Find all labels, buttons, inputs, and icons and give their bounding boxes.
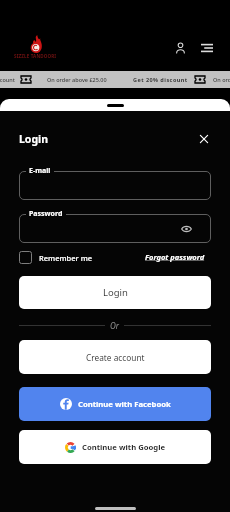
staticText: Continue with Google	[82, 442, 166, 452]
staticText: Login	[19, 132, 49, 146]
staticText: Password	[29, 209, 63, 219]
button[interactable]: Remember me	[19, 251, 93, 264]
button[interactable]: Menu	[195, 36, 219, 60]
staticText: Get 20% discount	[133, 76, 188, 83]
button[interactable]	[19, 171, 211, 200]
staticText: Login	[103, 286, 128, 299]
button[interactable]: Close	[194, 129, 214, 149]
button[interactable]: Account	[168, 36, 192, 60]
button[interactable]: Show password	[178, 221, 194, 237]
button[interactable]: Continue with Google	[19, 430, 211, 464]
staticText: Create account	[86, 352, 145, 363]
staticText: ccount	[0, 76, 15, 83]
staticText: Or	[110, 320, 119, 331]
button[interactable]: Forgot password	[145, 252, 211, 262]
staticText: E-mail	[29, 166, 51, 176]
staticText: Remember me	[39, 253, 93, 263]
staticText: On orde	[213, 76, 230, 83]
button[interactable]: Login	[19, 276, 211, 309]
staticText: SIZZLE TANDOORI	[14, 53, 57, 59]
button[interactable]: Continue with Facebook	[19, 387, 211, 421]
staticText: On order above £25.00	[47, 76, 107, 83]
button[interactable]: Create account	[19, 340, 211, 374]
button[interactable]	[19, 214, 211, 243]
staticText: Continue with Facebook	[78, 399, 171, 409]
staticText: Forgot password	[145, 252, 205, 262]
